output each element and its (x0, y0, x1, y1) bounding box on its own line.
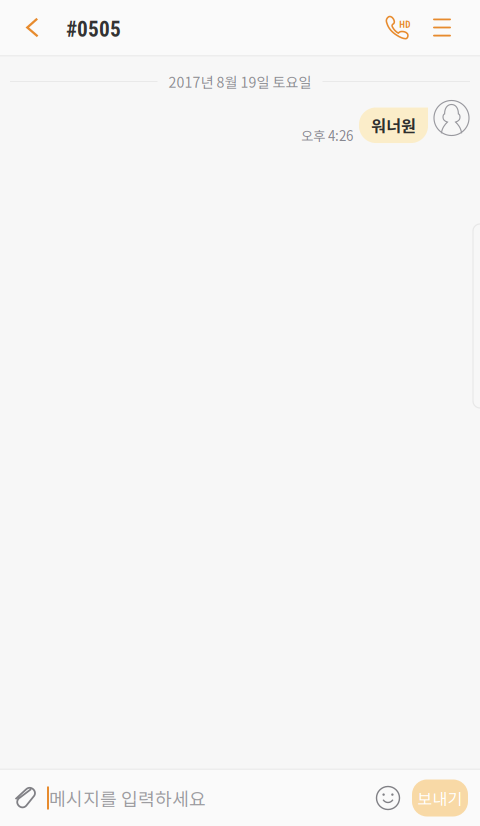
button[interactable]: 보내기 (412, 779, 468, 816)
button[interactable]: Emoji (364, 770, 412, 826)
button[interactable]: Back (0, 0, 51, 55)
staticText: #0505 (66, 17, 121, 42)
staticText: 메시지를 입력하세요 (49, 785, 206, 811)
staticText: 워너원 (371, 113, 416, 137)
staticText: 2017년 8월 19일 토요일 (168, 71, 311, 92)
button[interactable]: Menu (430, 0, 472, 55)
button[interactable]: HD voice call (374, 0, 430, 55)
button[interactable]: Attach file (0, 770, 47, 826)
staticText: 보내기 (417, 786, 462, 810)
staticText: HD (399, 19, 410, 30)
staticText: 오후 4:26 (301, 125, 353, 145)
